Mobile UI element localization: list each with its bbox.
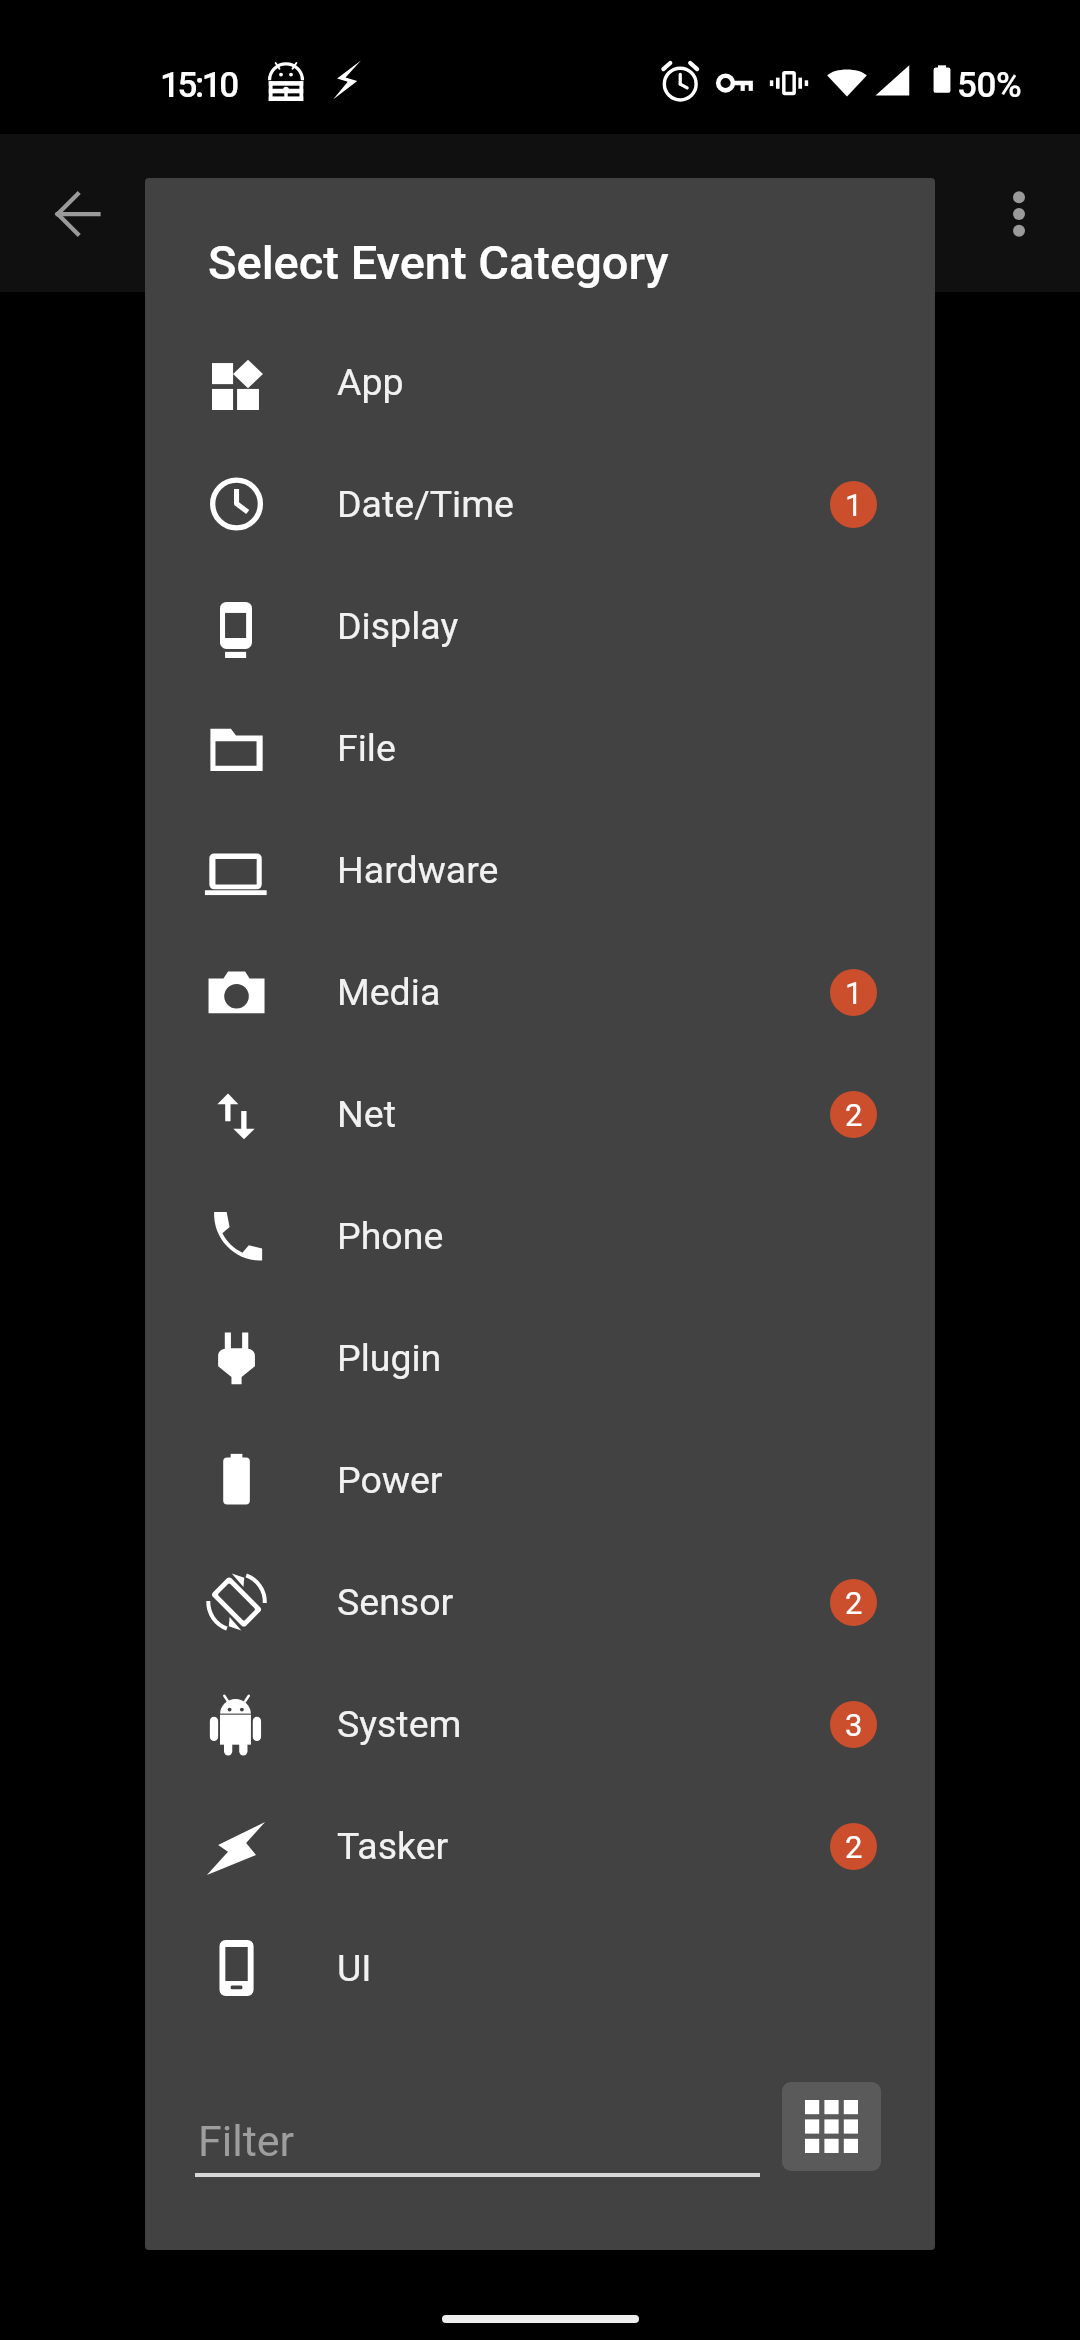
button[interactable]: Tasker [145,1785,935,1907]
staticText: 1 [845,975,863,1011]
staticText: 50% [957,65,1022,106]
button[interactable]: File [145,687,935,809]
staticText: Filter [198,2116,295,2166]
button[interactable]: More options [973,168,1065,260]
button[interactable]: Media [145,931,935,1053]
staticText: App [337,360,404,404]
staticText: Media [337,970,441,1014]
staticText: Hardware [337,848,499,892]
staticText: 15:10 [160,65,237,106]
button[interactable]: Grid view [782,2082,881,2171]
staticText: Sensor [337,1580,454,1624]
staticText: System [337,1702,462,1746]
button[interactable]: Date/Time [145,443,935,565]
staticText: Phone [337,1214,444,1258]
button[interactable]: Sensor [145,1541,935,1663]
staticText: UI [337,1946,372,1990]
button[interactable]: Hardware [145,809,935,931]
staticText: Display [337,604,459,648]
staticText: 1 [845,487,863,523]
staticText: Select Event Category [208,235,669,290]
staticText: File [337,726,396,770]
button[interactable]: Net [145,1053,935,1175]
button[interactable]: Plugin [145,1297,935,1419]
button[interactable]: Display [145,565,935,687]
button[interactable]: Back [30,168,122,260]
button[interactable]: System [145,1663,935,1785]
button[interactable]: Phone [145,1175,935,1297]
staticText: 3 [845,1707,863,1743]
button[interactable]: UI [145,1907,935,2029]
staticText: Net [337,1092,396,1136]
staticText: Date/Time [337,482,514,526]
staticText: Tasker [337,1824,449,1868]
button[interactable]: Power [145,1419,935,1541]
staticText: Plugin [337,1336,442,1380]
staticText: 2 [845,1585,863,1621]
staticText: 2 [845,1097,863,1133]
button[interactable]: App [145,321,935,443]
button[interactable]: Filter [198,2116,763,2206]
staticText: Power [337,1458,443,1502]
staticText: 2 [845,1829,863,1865]
